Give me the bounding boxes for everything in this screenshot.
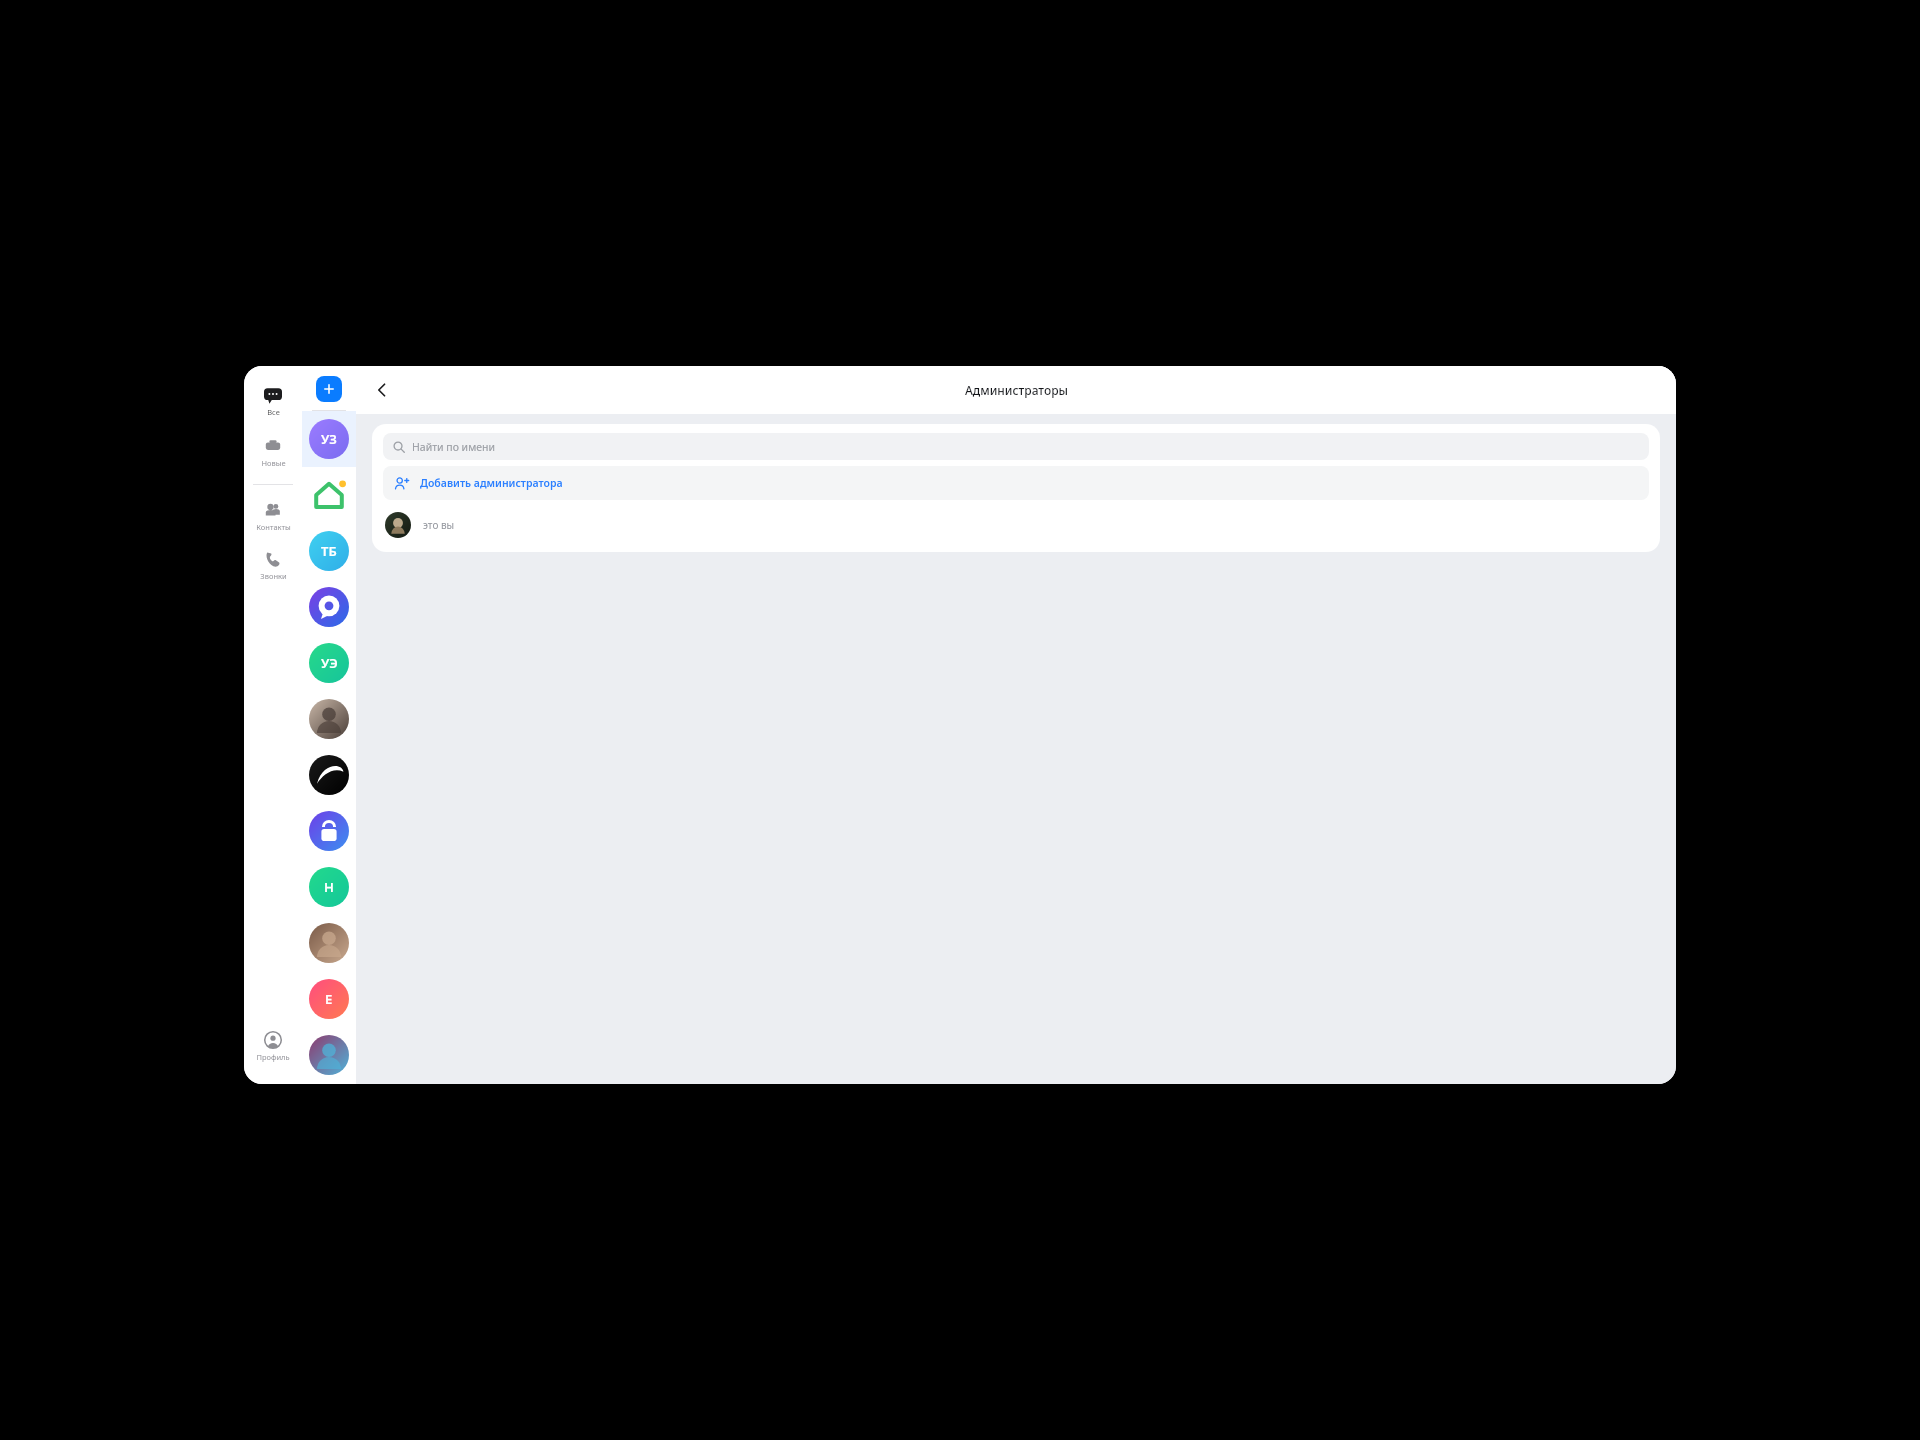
staticText: Е <box>325 990 333 1008</box>
button[interactable]: Найти по имени <box>383 433 1649 460</box>
staticText: это вы <box>423 518 455 532</box>
button[interactable]: Чат <box>302 467 356 523</box>
staticText: Добавить администратора <box>420 476 563 490</box>
button[interactable]: Чат <box>302 579 356 635</box>
staticText: Администраторы <box>965 382 1068 398</box>
button[interactable]: Чат <box>302 691 356 747</box>
staticText: ТБ <box>321 542 337 560</box>
button[interactable]: Чат <box>302 1027 356 1083</box>
staticText: Профиль <box>256 1052 290 1062</box>
button[interactable]: Добавить администратора <box>383 466 1649 500</box>
button[interactable]: Назад <box>366 374 398 406</box>
button[interactable]: Чат <box>302 411 356 467</box>
staticText: Звонки <box>260 571 287 581</box>
staticText: Н <box>324 878 334 896</box>
staticText: Новые <box>261 458 286 468</box>
button[interactable]: Создать <box>316 376 342 402</box>
button[interactable]: Профиль <box>244 1027 302 1066</box>
button[interactable]: Контакты <box>244 497 302 536</box>
button[interactable]: Чат <box>302 915 356 971</box>
button[interactable]: Звонки <box>244 546 302 585</box>
button[interactable]: Чат <box>302 859 356 915</box>
staticText: УЗ <box>321 430 337 448</box>
button[interactable]: Новые <box>244 433 302 472</box>
button[interactable]: Все <box>244 382 302 421</box>
button[interactable]: Чат <box>302 635 356 691</box>
staticText: Контакты <box>256 522 291 532</box>
button[interactable]: Чат <box>302 971 356 1027</box>
staticText: Найти по имени <box>412 440 495 454</box>
staticText: УЭ <box>321 654 338 672</box>
button[interactable]: Чат <box>302 523 356 579</box>
staticText: Все <box>267 407 280 417</box>
button[interactable]: это вы <box>383 507 1649 543</box>
button[interactable]: Чат <box>302 803 356 859</box>
button[interactable]: Чат <box>302 747 356 803</box>
